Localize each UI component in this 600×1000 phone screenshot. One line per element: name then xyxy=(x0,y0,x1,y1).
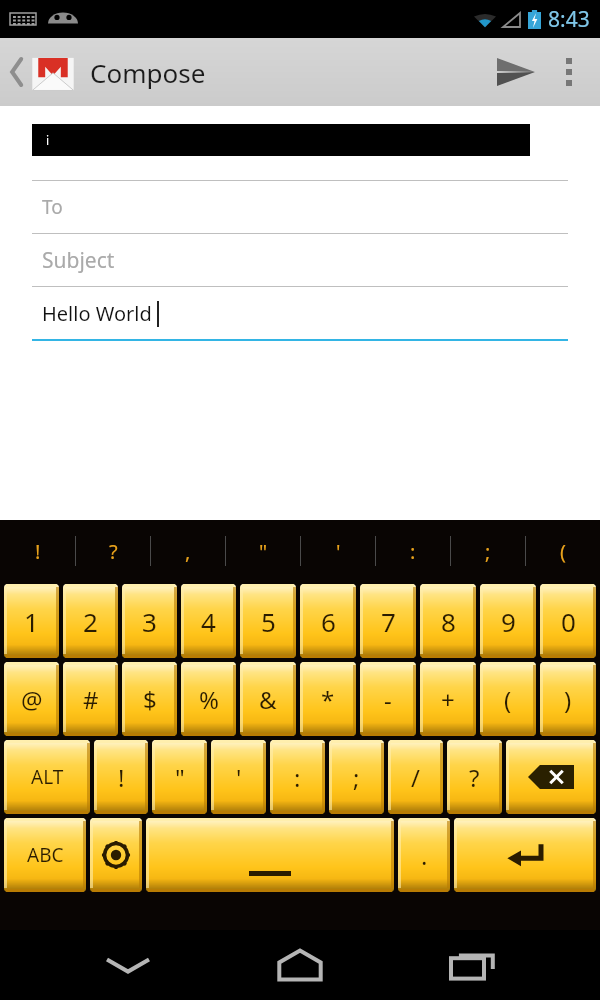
button[interactable]: ? xyxy=(447,740,502,814)
button[interactable]: Enter xyxy=(454,818,596,892)
staticText: ABC xyxy=(27,842,64,868)
button[interactable]: , xyxy=(151,520,225,582)
button[interactable]: Hello World xyxy=(32,287,568,341)
button[interactable]: " xyxy=(152,740,207,814)
button[interactable]: " xyxy=(226,520,300,582)
button[interactable]: ' xyxy=(301,520,375,582)
staticText: ? xyxy=(469,761,480,794)
button[interactable]: Space xyxy=(146,818,394,892)
button[interactable]: 3 xyxy=(122,584,177,658)
button[interactable]: ABC xyxy=(4,818,86,892)
staticText: 5 xyxy=(261,604,276,639)
staticText: " xyxy=(259,538,268,565)
button[interactable]: Home xyxy=(255,930,345,1000)
staticText: To xyxy=(42,194,63,220)
staticText: ALT xyxy=(31,764,64,790)
button[interactable]: 9 xyxy=(480,584,536,658)
button[interactable]: ! xyxy=(0,520,75,582)
button[interactable]: : xyxy=(376,520,450,582)
staticText: ( xyxy=(560,538,566,565)
button[interactable]: 0 xyxy=(540,584,596,658)
button[interactable]: ; xyxy=(451,520,525,582)
staticText: i xyxy=(46,132,50,148)
button[interactable]: # xyxy=(63,662,118,736)
staticText: * xyxy=(321,683,335,716)
staticText: 8:43 xyxy=(548,5,590,34)
button[interactable]: + xyxy=(420,662,476,736)
staticText: 8 xyxy=(441,604,456,639)
staticText: 6 xyxy=(321,604,336,639)
staticText: 4 xyxy=(201,604,216,639)
staticText: & xyxy=(259,683,277,716)
staticText: ; xyxy=(353,761,360,794)
button[interactable]: ; xyxy=(329,740,384,814)
button[interactable]: $ xyxy=(122,662,177,736)
button[interactable]: / xyxy=(388,740,443,814)
button[interactable]: Send xyxy=(488,44,544,100)
button[interactable]: Hide keyboard xyxy=(83,930,173,1000)
button[interactable]: To xyxy=(32,181,568,234)
staticText: . xyxy=(421,839,428,872)
button[interactable]: More options xyxy=(544,47,594,97)
button[interactable]: ! xyxy=(94,740,148,814)
staticText: ? xyxy=(109,538,118,565)
staticText: + xyxy=(441,683,455,716)
staticText: 9 xyxy=(501,604,516,639)
button[interactable]: Backspace xyxy=(506,740,596,814)
staticText: ; xyxy=(485,538,491,565)
button[interactable]: . xyxy=(398,818,450,892)
staticText: 7 xyxy=(381,604,396,639)
staticText: : xyxy=(410,538,416,565)
button[interactable]: 4 xyxy=(181,584,236,658)
staticText: ! xyxy=(35,538,41,565)
button[interactable]: 1 xyxy=(4,584,59,658)
button[interactable]: ' xyxy=(211,740,266,814)
button[interactable]: ? xyxy=(76,520,150,582)
staticText: 2 xyxy=(83,604,98,639)
staticText: # xyxy=(83,683,99,716)
staticText: " xyxy=(175,761,185,794)
staticText: 3 xyxy=(142,604,157,639)
staticText: Compose xyxy=(90,55,206,90)
staticText: % xyxy=(199,683,219,716)
staticText: 1 xyxy=(24,604,39,639)
staticText: , xyxy=(185,538,191,565)
button[interactable]: - xyxy=(360,662,416,736)
button[interactable]: ( xyxy=(480,662,536,736)
staticText: ! xyxy=(118,761,125,794)
staticText: $ xyxy=(143,683,157,716)
button[interactable]: 7 xyxy=(360,584,416,658)
staticText: : xyxy=(294,761,301,794)
button[interactable]: 6 xyxy=(300,584,356,658)
button[interactable]: Back xyxy=(6,50,80,94)
button[interactable]: ALT xyxy=(4,740,90,814)
button[interactable]: Subject xyxy=(32,234,568,287)
staticText: / xyxy=(411,761,420,794)
staticText: ' xyxy=(236,761,242,794)
button[interactable]: 5 xyxy=(240,584,296,658)
staticText: ( xyxy=(504,683,512,716)
button[interactable]: % xyxy=(181,662,236,736)
staticText: ) xyxy=(564,683,572,716)
button[interactable]: & xyxy=(240,662,296,736)
button[interactable]: 2 xyxy=(63,584,118,658)
staticText: Subject xyxy=(42,246,115,275)
staticText: - xyxy=(384,683,392,716)
button[interactable]: ( xyxy=(526,520,600,582)
button[interactable]: @ xyxy=(4,662,59,736)
staticText: @ xyxy=(21,683,43,716)
button[interactable]: ) xyxy=(540,662,596,736)
button[interactable]: * xyxy=(300,662,356,736)
button[interactable]: : xyxy=(270,740,325,814)
button[interactable]: Recent apps xyxy=(428,930,518,1000)
staticText: ' xyxy=(336,538,341,565)
staticText: 0 xyxy=(561,604,576,639)
staticText: Hello World xyxy=(42,300,152,327)
button[interactable]: Change input method xyxy=(90,818,142,892)
button[interactable]: 8 xyxy=(420,584,476,658)
